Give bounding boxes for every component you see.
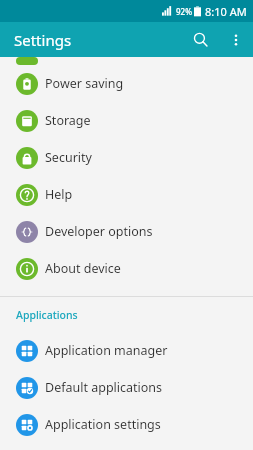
button[interactable]: Default applications — [0, 369, 253, 406]
button[interactable]: Help — [0, 176, 253, 213]
staticText: Applications — [16, 308, 78, 322]
button[interactable]: More options — [218, 22, 253, 57]
button[interactable]: Application settings — [0, 406, 253, 443]
button[interactable]: Search — [183, 22, 218, 57]
button[interactable]: Developer options — [0, 213, 253, 250]
staticText: Developer options — [45, 223, 153, 240]
button[interactable]: Power saving — [0, 65, 253, 102]
staticText: Application settings — [45, 416, 161, 433]
staticText: 8:10 AM — [205, 4, 247, 19]
staticText: 92% — [176, 6, 192, 17]
staticText: Application manager — [45, 342, 168, 359]
staticText: Settings — [14, 30, 72, 50]
button[interactable]: Storage — [0, 102, 253, 139]
button[interactable] — [0, 57, 253, 65]
staticText: Power saving — [45, 75, 124, 92]
staticText: Default applications — [45, 379, 163, 396]
staticText: Help — [45, 186, 73, 203]
button[interactable]: About device — [0, 250, 253, 287]
staticText: Security — [45, 149, 92, 166]
staticText: Storage — [45, 112, 91, 129]
button[interactable]: Application manager — [0, 332, 253, 369]
staticText: About device — [45, 260, 121, 277]
button[interactable]: Security — [0, 139, 253, 176]
